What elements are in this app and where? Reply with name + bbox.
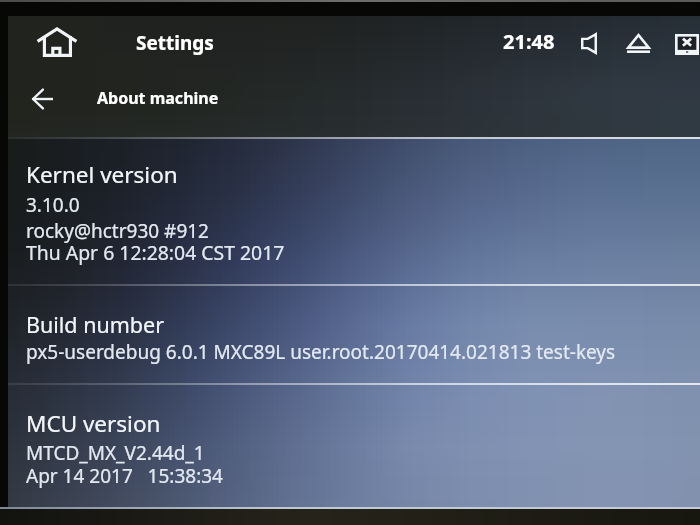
button[interactable]: Clock — [495, 23, 559, 57]
staticText: rocky@hctr930 #912 — [26, 218, 209, 244]
button[interactable]: Eject — [621, 23, 656, 63]
button[interactable]: Screen off — [669, 24, 700, 64]
staticText: px5-userdebug 6.0.1 MXC89L user.root.201… — [26, 339, 616, 365]
staticText: 3.10.0 — [26, 192, 80, 218]
staticText: Kernel version — [26, 159, 178, 190]
staticText: MCU version — [26, 408, 161, 439]
staticText: Thu Apr 6 12:28:04 CST 2017 — [26, 239, 285, 265]
staticText: MTCD_MX_V2.44d_1 — [26, 440, 205, 466]
staticText: Settings — [136, 30, 214, 56]
staticText: Apr 14 2017 15:38:34 — [26, 463, 223, 489]
button[interactable]: Home — [32, 23, 82, 61]
staticText: About machine — [97, 87, 219, 109]
staticText: 21:48 — [503, 28, 555, 55]
button[interactable]: Back — [23, 80, 62, 118]
staticText: Build number — [26, 310, 165, 339]
button[interactable]: Mute — [571, 23, 607, 64]
